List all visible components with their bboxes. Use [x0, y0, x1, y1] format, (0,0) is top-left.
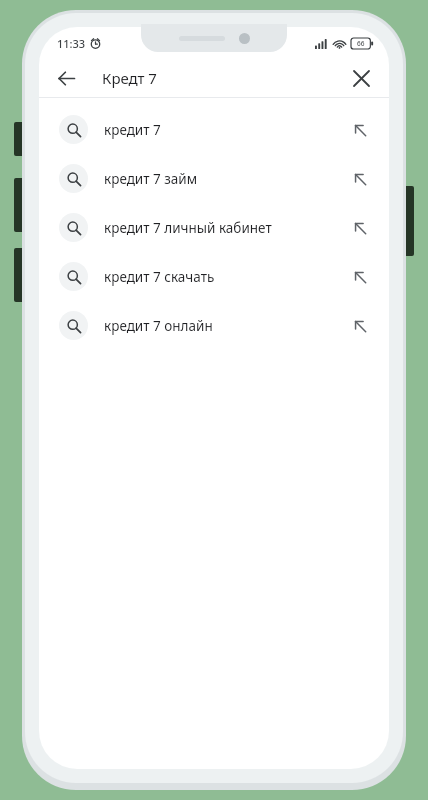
other: Insert query — [343, 211, 377, 245]
button[interactable]: кредит 7 — [39, 105, 389, 154]
other: Insert query — [343, 113, 377, 147]
other: Insert query — [343, 309, 377, 343]
button[interactable]: кредит 7 онлайн — [39, 301, 389, 350]
button[interactable]: кредит 7 займ — [39, 154, 389, 203]
other: Insert query — [343, 260, 377, 294]
staticText: кредит 7 займ — [104, 170, 343, 188]
button[interactable]: кредит 7 скачать — [39, 252, 389, 301]
staticText: Кредт 7 — [102, 68, 157, 88]
button[interactable]: Back — [47, 59, 85, 97]
staticText: 66 — [357, 39, 365, 48]
staticText: кредит 7 скачать — [104, 268, 343, 286]
button[interactable]: Close — [343, 60, 379, 96]
other: Insert query — [343, 162, 377, 196]
staticText: кредит 7 онлайн — [104, 317, 343, 335]
staticText: кредит 7 личный кабинет — [104, 219, 343, 237]
button[interactable]: кредит 7 личный кабинет — [39, 203, 389, 252]
staticText: 11:33 — [57, 36, 86, 51]
staticText: кредит 7 — [104, 121, 343, 139]
